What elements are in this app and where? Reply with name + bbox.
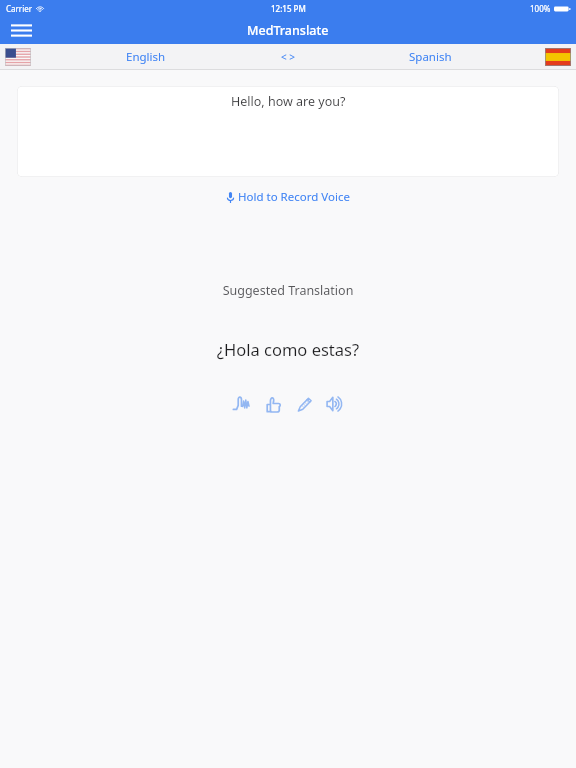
staticText: English <box>126 49 166 65</box>
button[interactable]: Thumbs up <box>261 392 285 416</box>
staticText: Hello, how are you? <box>231 93 346 110</box>
button[interactable]: Speak translation <box>323 392 347 416</box>
button[interactable]: Menu <box>0 16 42 44</box>
button[interactable]: Hello, how are you? <box>17 86 559 177</box>
staticText: Suggested Translation <box>0 282 576 299</box>
button[interactable]: Source language: United States <box>0 44 36 70</box>
staticText: Spanish <box>409 49 452 65</box>
button[interactable]: Edit translation <box>292 392 316 416</box>
staticText: ¿Hola como estas? <box>0 338 576 360</box>
button[interactable]: English <box>36 44 256 70</box>
staticText: 100% <box>530 3 551 14</box>
button[interactable]: Swap languages <box>256 44 320 70</box>
staticText: Carrier <box>6 3 33 14</box>
staticText: Hold to Record Voice <box>238 189 350 205</box>
staticText: < > <box>281 50 296 64</box>
button[interactable]: Hold to Record Voice <box>219 186 358 208</box>
button[interactable]: Spanish <box>320 44 540 70</box>
button[interactable]: Target language: Spain <box>540 44 576 70</box>
staticText: MedTranslate <box>247 22 329 39</box>
button[interactable]: Sign language <box>230 392 254 416</box>
staticText: 12:15 PM <box>271 3 306 14</box>
